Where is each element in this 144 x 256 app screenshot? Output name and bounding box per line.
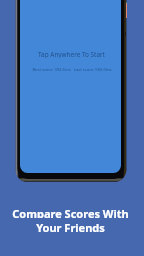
staticText: Tap Anywhere To Start	[38, 50, 105, 58]
staticText: Compare Scores With	[12, 206, 129, 218]
staticText: Your Friends	[36, 220, 105, 232]
staticText: Best score: 392.6ms Last score: 565.0ms	[32, 67, 112, 73]
button[interactable]	[20, 0, 121, 173]
